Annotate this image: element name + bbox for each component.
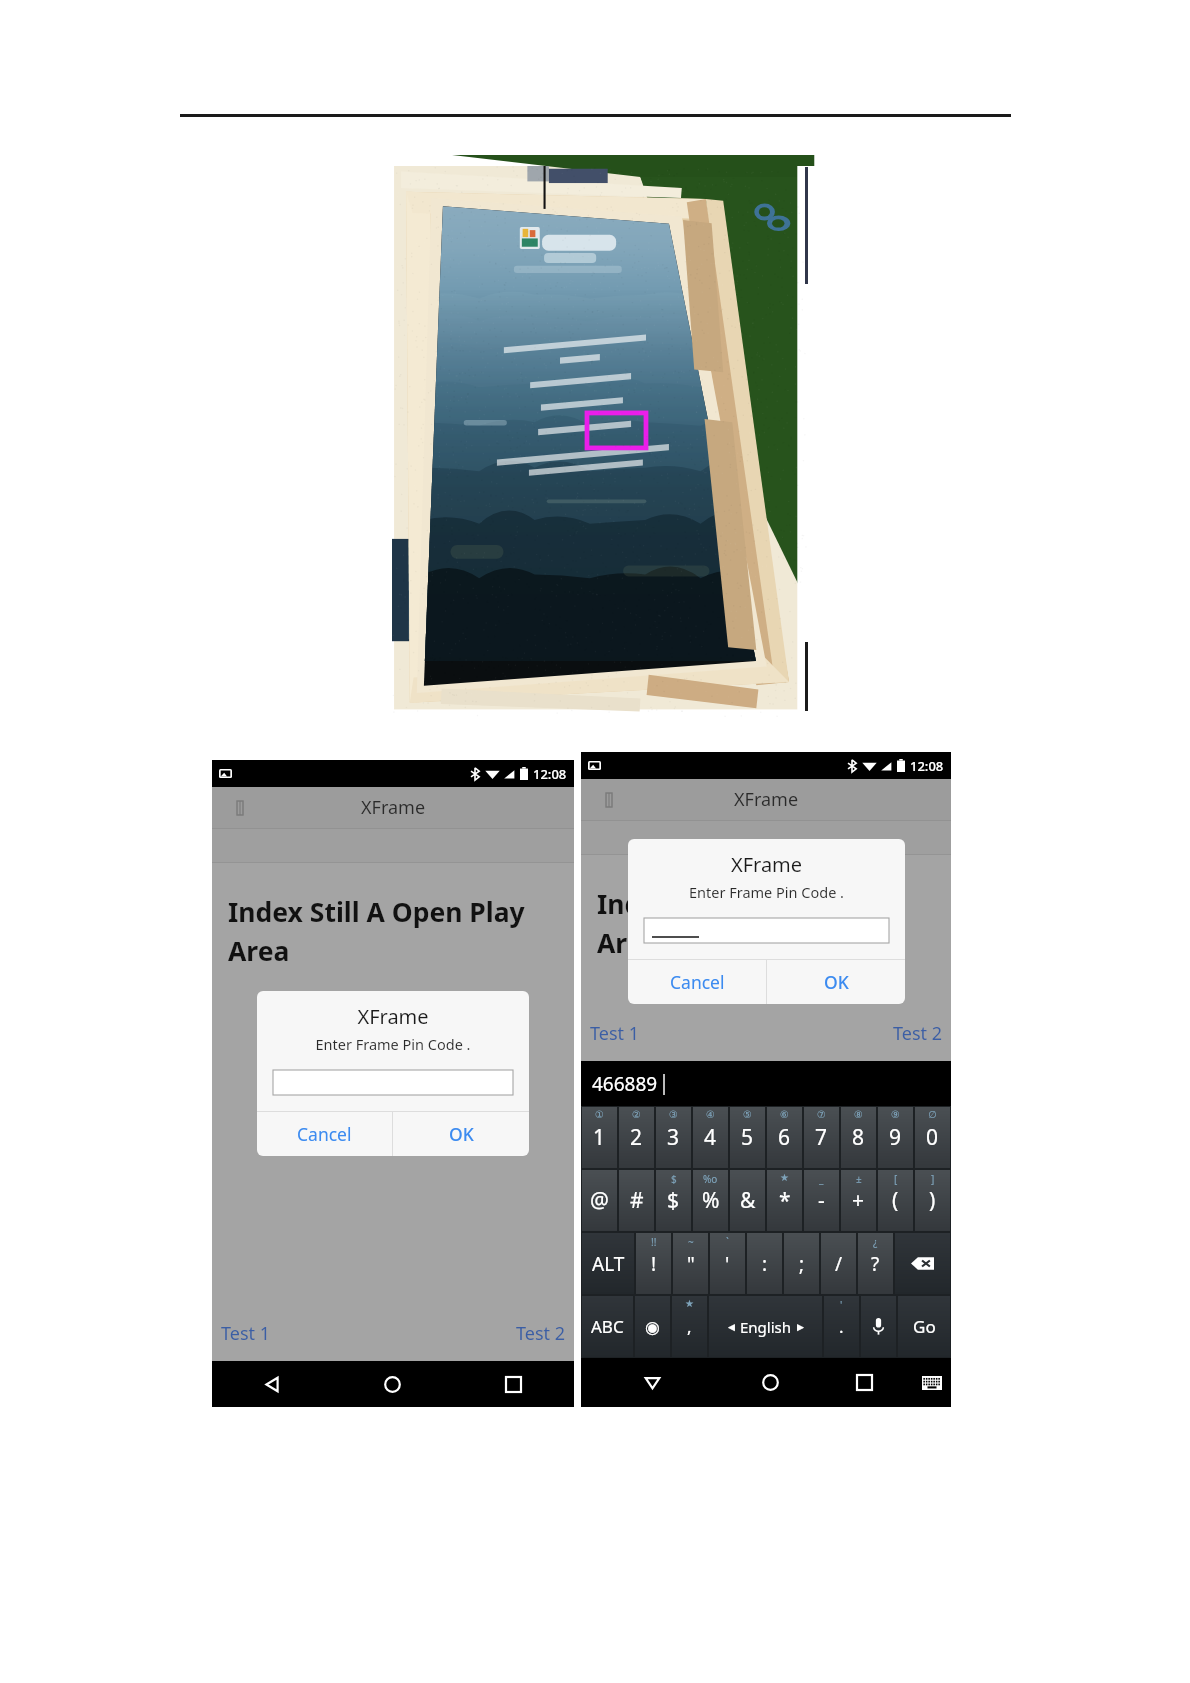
staticText: / xyxy=(835,1251,843,1277)
staticText: OK xyxy=(824,970,849,994)
staticText: $ xyxy=(667,1186,680,1215)
button[interactable]: ± xyxy=(841,1170,876,1231)
button[interactable]: : xyxy=(747,1233,782,1294)
staticText: 0 xyxy=(926,1123,939,1152)
button[interactable]: Go xyxy=(898,1296,950,1357)
staticText: ★ xyxy=(780,1172,789,1184)
staticText: 4 xyxy=(704,1123,717,1152)
button[interactable]: ∅ xyxy=(915,1107,950,1168)
button[interactable]: %o xyxy=(693,1170,728,1231)
staticText: Cancel xyxy=(297,1122,352,1146)
button[interactable]: Cancel xyxy=(257,1112,392,1156)
button[interactable]: ] xyxy=(915,1170,950,1231)
staticText: ∅ xyxy=(928,1109,937,1121)
staticText: XFrame xyxy=(361,795,426,820)
button[interactable]: ; xyxy=(784,1233,819,1294)
staticText: @ xyxy=(590,1186,609,1215)
staticText: . xyxy=(839,1315,844,1338)
staticText: ' xyxy=(840,1298,843,1312)
staticText: ① xyxy=(595,1109,604,1121)
button[interactable]: Recent apps xyxy=(816,1358,912,1407)
staticText: 2 xyxy=(630,1123,643,1152)
staticText: !! xyxy=(651,1235,657,1249)
staticText: 466889 xyxy=(592,1071,658,1097)
button[interactable] xyxy=(895,1233,950,1294)
staticText: 7 xyxy=(815,1123,828,1152)
button[interactable]: _ xyxy=(804,1170,839,1231)
button[interactable]: Test 2 xyxy=(893,1021,942,1046)
button[interactable]: ⑨ xyxy=(878,1107,913,1168)
button[interactable]: ' xyxy=(824,1296,859,1357)
button[interactable]: Home xyxy=(332,1361,453,1407)
button[interactable]: $ xyxy=(656,1170,691,1231)
button[interactable]: ① xyxy=(582,1107,617,1168)
button[interactable]: ⑤ xyxy=(730,1107,765,1168)
staticText: ] xyxy=(931,1172,935,1186)
button[interactable]: # xyxy=(619,1170,654,1231)
button[interactable] xyxy=(861,1296,896,1357)
button[interactable] xyxy=(644,918,889,943)
button[interactable]: Test 1 xyxy=(590,1021,639,1046)
staticText: ; xyxy=(799,1251,805,1277)
button[interactable]: Recent apps xyxy=(453,1361,574,1407)
button[interactable]: [ xyxy=(878,1170,913,1231)
staticText: Enter Frame Pin Code . xyxy=(257,1034,529,1054)
staticText: ④ xyxy=(706,1109,715,1121)
staticText: _ xyxy=(819,1172,824,1186)
staticText: ` xyxy=(726,1235,729,1249)
staticText: * xyxy=(779,1186,791,1215)
staticText: 12:08 xyxy=(533,765,567,783)
staticText: Go xyxy=(913,1315,936,1338)
button[interactable]: ◀ xyxy=(709,1296,822,1357)
button[interactable]: ◉ xyxy=(635,1296,670,1357)
button[interactable]: Switch keyboard xyxy=(912,1358,951,1407)
staticText: OK xyxy=(449,1122,474,1146)
button[interactable]: !! xyxy=(636,1233,671,1294)
staticText: : xyxy=(762,1251,768,1277)
button[interactable]: ` xyxy=(710,1233,745,1294)
button[interactable]: Test 2 xyxy=(516,1321,565,1346)
button[interactable]: ¿ xyxy=(858,1233,893,1294)
staticText: # xyxy=(630,1186,644,1215)
staticText: Index Still A Open Play Area xyxy=(228,894,562,969)
button[interactable]: Back xyxy=(212,1361,332,1407)
button[interactable]: & xyxy=(730,1170,765,1231)
button[interactable]: Cancel xyxy=(628,960,766,1004)
button[interactable]: ④ xyxy=(693,1107,728,1168)
button[interactable]: ③ xyxy=(656,1107,691,1168)
button[interactable]: ABC xyxy=(582,1296,633,1357)
staticText: ~ xyxy=(688,1235,694,1249)
button[interactable]: ★ xyxy=(672,1296,707,1357)
staticText: 8 xyxy=(852,1123,865,1152)
button[interactable]: ~ xyxy=(673,1233,708,1294)
staticText: [ xyxy=(894,1172,898,1186)
staticText: 5 xyxy=(741,1123,754,1152)
staticText: English xyxy=(740,1317,792,1337)
staticText: ⑥ xyxy=(780,1109,789,1121)
button[interactable] xyxy=(273,1070,513,1095)
button[interactable]: Home xyxy=(724,1358,816,1407)
button[interactable]: Hide keyboard xyxy=(581,1358,724,1407)
button[interactable]: OK xyxy=(393,1112,529,1156)
button[interactable]: ⑧ xyxy=(841,1107,876,1168)
button[interactable]: ALT xyxy=(582,1233,634,1294)
button[interactable]: Test 1 xyxy=(221,1321,270,1346)
staticText: XFrame xyxy=(257,1003,529,1030)
button[interactable]: Navigate up xyxy=(601,792,617,808)
staticText: ¿ xyxy=(873,1235,878,1249)
button[interactable]: @ xyxy=(582,1170,617,1231)
staticText: %o xyxy=(703,1172,718,1186)
button[interactable]: ⑥ xyxy=(767,1107,802,1168)
staticText: + xyxy=(852,1186,865,1215)
button[interactable]: Navigate up xyxy=(232,800,248,816)
staticText: 9 xyxy=(889,1123,902,1152)
button[interactable]: OK xyxy=(767,960,905,1004)
button[interactable]: / xyxy=(821,1233,856,1294)
staticText: Index Still A Open Play Area xyxy=(597,886,939,961)
staticText: ± xyxy=(856,1172,862,1186)
staticText: $ xyxy=(671,1172,677,1186)
button[interactable]: ② xyxy=(619,1107,654,1168)
button[interactable]: ⑦ xyxy=(804,1107,839,1168)
staticText: ◉ xyxy=(645,1317,660,1337)
button[interactable]: ★ xyxy=(767,1170,802,1231)
